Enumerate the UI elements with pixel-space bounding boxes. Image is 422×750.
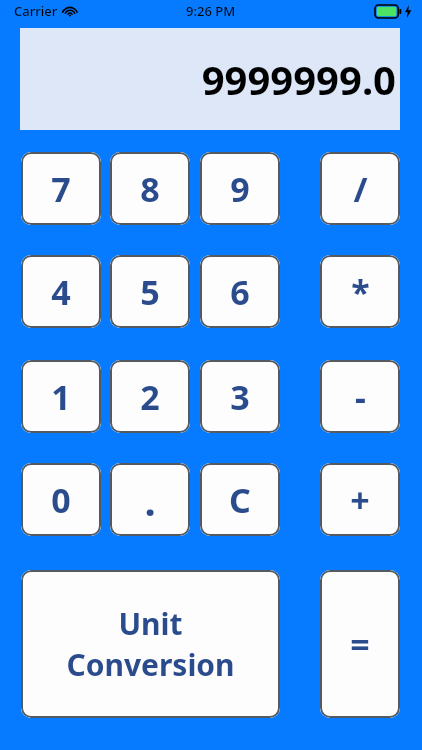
staticText: 1 (51, 374, 71, 420)
button[interactable]: 2 (110, 360, 190, 433)
staticText: / (353, 166, 368, 212)
button[interactable]: 5 (110, 255, 190, 328)
button[interactable]: - (320, 360, 400, 433)
button[interactable]: = (320, 570, 400, 718)
staticText: Carrier (14, 2, 58, 20)
button[interactable]: 0 (21, 463, 101, 536)
button[interactable]: * (320, 255, 400, 328)
staticText: 9 (230, 166, 250, 212)
button[interactable]: . (110, 463, 190, 536)
staticText: 5 (140, 269, 160, 315)
staticText: 0 (51, 477, 71, 523)
staticText: Conversion (66, 644, 235, 685)
staticText: 3 (230, 374, 250, 420)
staticText: 2 (140, 374, 160, 420)
staticText: 9:26 PM (186, 2, 236, 20)
button[interactable]: 8 (110, 152, 190, 225)
staticText: C (229, 477, 251, 523)
button[interactable]: C (200, 463, 280, 536)
staticText: 8 (140, 166, 160, 212)
button[interactable]: + (320, 463, 400, 536)
button[interactable]: 4 (21, 255, 101, 328)
staticText: * (351, 269, 370, 315)
button[interactable]: 7 (21, 152, 101, 225)
staticText: . (144, 473, 156, 527)
staticText: 4 (51, 269, 71, 315)
staticText: 7 (51, 166, 71, 212)
staticText: Unit (118, 603, 183, 644)
button[interactable]: 9 (200, 152, 280, 225)
button[interactable]: 3 (200, 360, 280, 433)
staticText: - (355, 374, 366, 420)
button[interactable]: 6 (200, 255, 280, 328)
button[interactable]: 1 (21, 360, 101, 433)
staticText: 9999999.0 (201, 52, 396, 106)
staticText: = (350, 621, 370, 667)
button[interactable]: Unit (21, 570, 280, 718)
staticText: 6 (230, 269, 250, 315)
staticText: + (350, 477, 370, 523)
button[interactable]: / (320, 152, 400, 225)
